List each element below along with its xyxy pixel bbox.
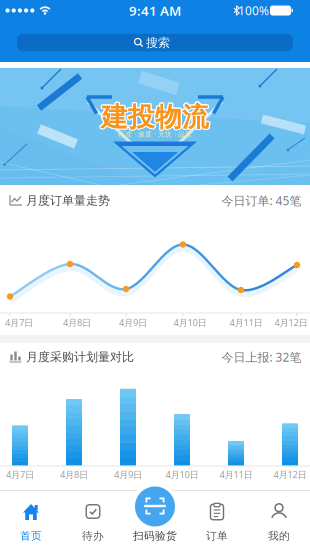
staticText: 4月10日 (173, 316, 206, 329)
staticText: 4月8日 (63, 316, 91, 329)
button[interactable]: 我的 (248, 465, 310, 550)
staticText: 4月12日 (273, 468, 306, 481)
staticText: 搜索 (146, 35, 170, 50)
staticText: 标准 · 速度 · 无忧 · 品质 (118, 130, 192, 138)
staticText: 月度订单量走势 (26, 193, 110, 208)
staticText: 100% (238, 2, 269, 18)
staticText: 建投物流 (102, 100, 210, 132)
staticText: 今日上报: 32笔 (221, 349, 301, 365)
button[interactable]: 扫码验货 (124, 465, 186, 550)
staticText: 4月10日 (165, 468, 198, 481)
staticText: 9:41 AM (129, 2, 181, 19)
staticText: 月度采购计划量对比 (26, 350, 134, 364)
button[interactable]: 订单 (186, 465, 248, 550)
staticText: 建投物流 (100, 101, 208, 134)
staticText: 今日订单: 45笔 (221, 192, 301, 208)
staticText: 建投物流 (101, 101, 209, 133)
staticText: 4月7日 (5, 316, 33, 329)
staticText: 待办 (82, 529, 104, 542)
staticText: 4月9日 (114, 468, 142, 481)
staticText: 4月11日 (219, 468, 252, 481)
staticText: 订单 (206, 529, 228, 542)
staticText: 4月12日 (274, 316, 307, 329)
staticText: 4月11日 (229, 316, 262, 329)
staticText: 扫码验货 (133, 529, 177, 542)
staticText: 建投物流 (102, 101, 210, 134)
staticText: 4月8日 (60, 468, 88, 481)
staticText: 建投物流 (100, 101, 208, 133)
staticText: 建投物流 (102, 101, 210, 133)
button[interactable]: 首页 (0, 465, 62, 550)
staticText: 我的 (268, 529, 290, 542)
staticText: 4月7日 (6, 468, 34, 481)
button[interactable]: 待办 (62, 465, 124, 550)
staticText: 建投物流 (100, 100, 208, 132)
staticText: 首页 (20, 529, 42, 542)
staticText: 4月9日 (119, 316, 147, 329)
staticText: 建投物流 (101, 102, 209, 135)
staticText: 建投物流 (101, 99, 209, 132)
button[interactable]: 搜索 (17, 34, 293, 51)
